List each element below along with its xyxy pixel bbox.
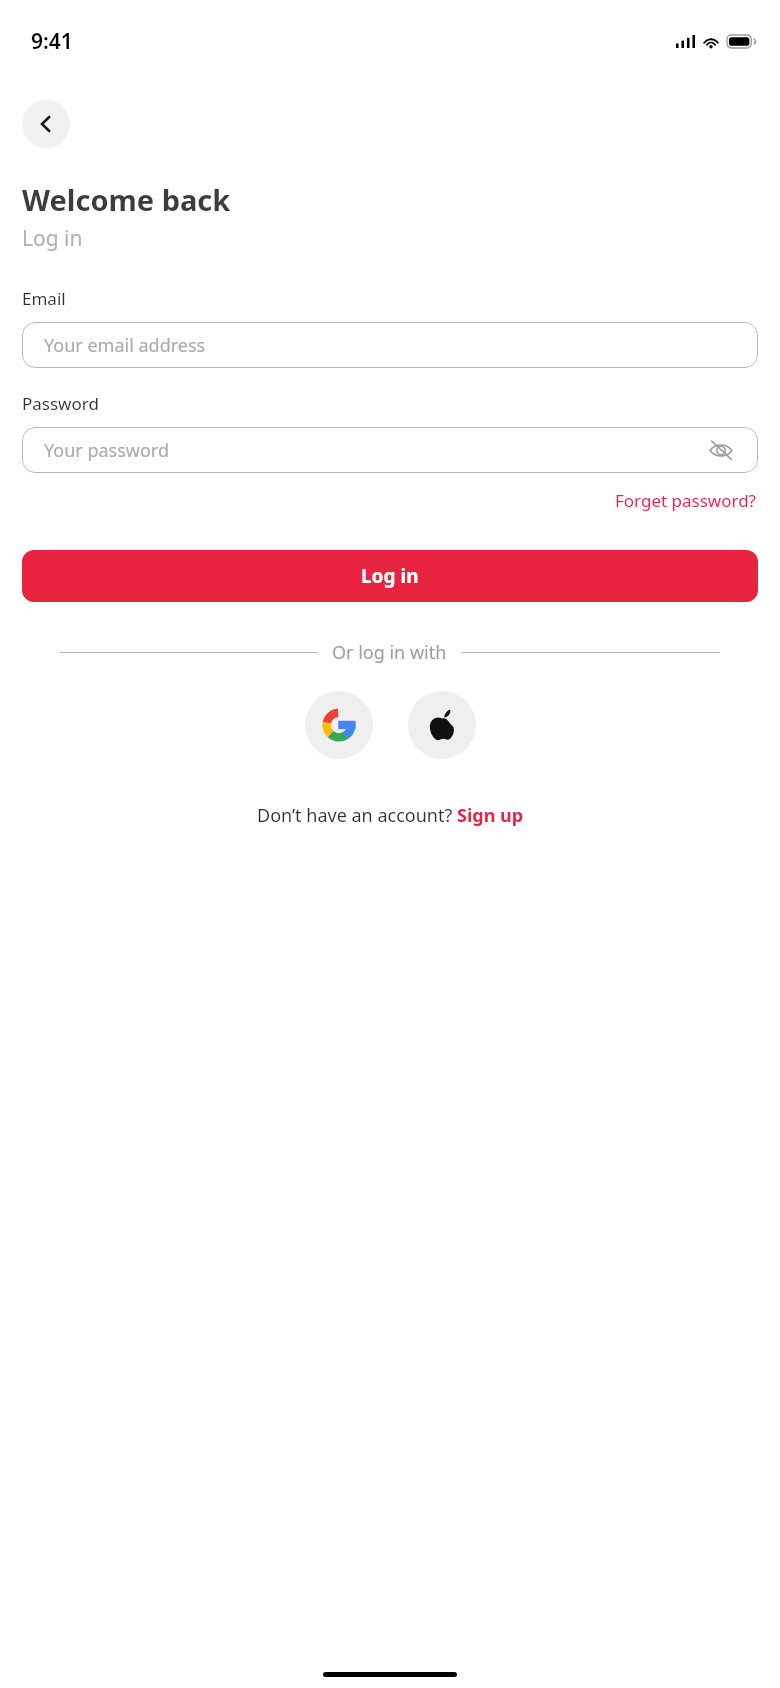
staticText: Your password [44, 438, 170, 463]
staticText: 9:41 [31, 27, 73, 56]
staticText: Log in [361, 563, 419, 589]
staticText: Or log in with [332, 640, 447, 665]
button[interactable]: Your email address [22, 322, 758, 368]
button[interactable]: Log in with Apple [408, 691, 476, 759]
button[interactable]: Forget password? [613, 487, 758, 514]
staticText: Welcome back [22, 180, 231, 219]
staticText: Don’t have an account? [257, 803, 457, 828]
staticText: Sign up [457, 803, 524, 828]
button[interactable]: Log in [22, 550, 758, 602]
button[interactable]: Sign up [457, 803, 524, 828]
button[interactable]: Show password [706, 435, 736, 465]
button[interactable]: Your password [22, 427, 758, 473]
staticText: Your email address [44, 333, 206, 358]
staticText: Email [22, 287, 66, 310]
button[interactable]: Log in with Google [305, 691, 373, 759]
staticText: Password [22, 392, 99, 415]
staticText: Log in [22, 224, 83, 253]
staticText: Forget password? [615, 489, 756, 512]
button[interactable]: Back [22, 100, 70, 148]
